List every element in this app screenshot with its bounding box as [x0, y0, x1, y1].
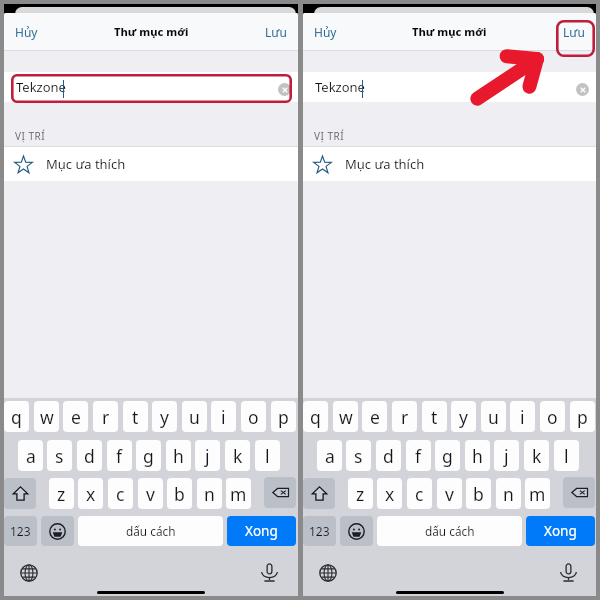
staticText: Tekzone	[315, 78, 365, 96]
button[interactable]: e	[362, 401, 387, 432]
button[interactable]: Change keyboard	[20, 564, 38, 582]
button[interactable]: h	[465, 440, 490, 471]
button[interactable]: Shift	[303, 478, 335, 509]
button[interactable]: f	[107, 440, 132, 471]
staticText: c	[116, 482, 125, 506]
button[interactable]: s	[346, 440, 371, 471]
button[interactable]: Xong	[526, 516, 595, 546]
button[interactable]: dấu cách	[377, 516, 522, 546]
staticText: d	[84, 444, 95, 468]
button[interactable]: k	[225, 440, 250, 471]
button[interactable]: u	[182, 401, 207, 432]
button[interactable]: c	[407, 478, 432, 509]
button[interactable]: g	[136, 440, 161, 471]
button[interactable]: Mục ưa thích	[303, 146, 596, 181]
staticText: f	[415, 444, 422, 468]
button[interactable]: p	[271, 401, 296, 432]
button[interactable]: y	[451, 401, 476, 432]
button[interactable]: x	[78, 478, 103, 509]
button[interactable]: Shift	[4, 478, 36, 509]
button[interactable]: n	[197, 478, 222, 509]
staticText: y	[160, 405, 169, 429]
staticText: t	[431, 405, 438, 429]
staticText: r	[102, 405, 110, 429]
button[interactable]: j	[494, 440, 519, 471]
button[interactable]: z	[49, 478, 74, 509]
button[interactable]: c	[108, 478, 133, 509]
button[interactable]: h	[166, 440, 191, 471]
staticText: Tekzone	[16, 78, 66, 96]
button[interactable]: b	[466, 478, 491, 509]
button[interactable]: e	[63, 401, 88, 432]
staticText: v	[146, 482, 155, 506]
button[interactable]: m	[226, 478, 251, 509]
button[interactable]: Clear text	[278, 83, 291, 96]
staticText: Mục ưa thích	[46, 155, 126, 173]
button[interactable]: p	[570, 401, 595, 432]
button[interactable]: Dictation	[560, 563, 577, 582]
staticText: u	[189, 405, 200, 429]
staticText: p	[577, 405, 588, 429]
button[interactable]: m	[525, 478, 550, 509]
button[interactable]: j	[195, 440, 220, 471]
button[interactable]: q	[303, 401, 328, 432]
button[interactable]: d	[77, 440, 102, 471]
button[interactable]: b	[167, 478, 192, 509]
button[interactable]: Backspace	[264, 477, 296, 508]
button[interactable]: 123	[4, 516, 37, 546]
staticText: VỊ TRÍ	[314, 129, 345, 143]
button[interactable]: n	[496, 478, 521, 509]
button[interactable]: a	[317, 440, 342, 471]
button[interactable]: d	[376, 440, 401, 471]
button[interactable]: Lưu	[265, 24, 287, 40]
button[interactable]: Xong	[227, 516, 296, 546]
button[interactable]: l	[255, 440, 280, 471]
staticText: Mục ưa thích	[345, 155, 425, 173]
staticText: Thư mục mới	[114, 24, 189, 39]
button[interactable]: f	[406, 440, 431, 471]
staticText: n	[503, 482, 514, 506]
button[interactable]: w	[333, 401, 358, 432]
button[interactable]: q	[4, 401, 29, 432]
button[interactable]: w	[34, 401, 59, 432]
button[interactable]: Lưu	[563, 24, 585, 40]
button[interactable]: Change keyboard	[319, 564, 337, 582]
staticText: 123	[309, 523, 330, 539]
button[interactable]: s	[47, 440, 72, 471]
staticText: k	[532, 444, 542, 468]
button[interactable]: l	[554, 440, 579, 471]
button[interactable]: v	[138, 478, 163, 509]
staticText: b	[174, 482, 185, 506]
staticText: s	[354, 444, 363, 468]
button[interactable]: t	[422, 401, 447, 432]
button[interactable]: Emoji	[340, 516, 373, 546]
button[interactable]: dấu cách	[78, 516, 223, 546]
button[interactable]: o	[241, 401, 266, 432]
button[interactable]: k	[524, 440, 549, 471]
button[interactable]: z	[348, 478, 373, 509]
button[interactable]: 123	[303, 516, 336, 546]
button[interactable]: Mục ưa thích	[4, 146, 298, 181]
staticText: j	[504, 444, 509, 468]
button[interactable]: Dictation	[261, 563, 278, 582]
button[interactable]: x	[377, 478, 402, 509]
button[interactable]: r	[392, 401, 417, 432]
button[interactable]: i	[211, 401, 236, 432]
button[interactable]: i	[510, 401, 535, 432]
button[interactable]: o	[540, 401, 565, 432]
staticText: t	[132, 405, 139, 429]
button[interactable]: a	[18, 440, 43, 471]
button[interactable]: Hủy	[314, 24, 337, 40]
staticText: g	[143, 444, 154, 468]
button[interactable]: r	[93, 401, 118, 432]
button[interactable]: u	[481, 401, 506, 432]
button[interactable]: g	[435, 440, 460, 471]
staticText: p	[278, 405, 289, 429]
button[interactable]: Backspace	[563, 477, 595, 508]
button[interactable]: t	[123, 401, 148, 432]
button[interactable]: Emoji	[41, 516, 74, 546]
button[interactable]: Clear text	[576, 83, 589, 96]
button[interactable]: v	[437, 478, 462, 509]
button[interactable]: Hủy	[15, 24, 38, 40]
button[interactable]: y	[152, 401, 177, 432]
